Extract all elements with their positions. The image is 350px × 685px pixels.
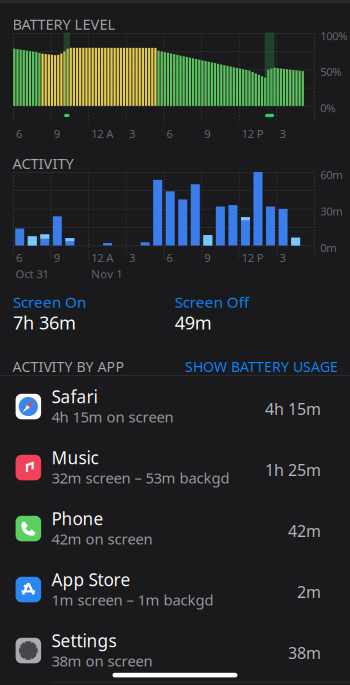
staticText: 1h 25m	[265, 459, 321, 481]
staticText: 30m	[320, 203, 342, 219]
button[interactable]: App Store	[0, 559, 350, 620]
staticText: 32m screen – 53m backgd	[51, 468, 229, 488]
staticText: 0m	[320, 240, 336, 255]
staticText: 12 P	[242, 250, 264, 265]
staticText: 6	[16, 126, 22, 141]
staticText: 7h 36m	[13, 310, 76, 335]
staticText: 42m on screen	[51, 529, 152, 549]
staticText: 3	[279, 250, 285, 265]
staticText: 9	[204, 126, 210, 141]
staticText: 6	[166, 126, 172, 141]
button[interactable]: SHOW BATTERY USAGE	[178, 357, 338, 376]
staticText: Safari	[51, 385, 97, 408]
staticText: 3	[129, 126, 135, 141]
staticText: 50%	[320, 64, 341, 79]
staticText: 6	[16, 250, 22, 265]
staticText: 49m	[175, 310, 212, 335]
staticText: Phone	[51, 507, 103, 530]
staticText: Nov 1	[91, 266, 122, 281]
staticText: 12 A	[91, 126, 113, 141]
staticText: 60m	[320, 167, 342, 182]
staticText: 9	[54, 126, 60, 141]
staticText: 100%	[320, 28, 347, 43]
button[interactable]: Settings	[0, 620, 350, 681]
staticText: Screen Off	[175, 291, 249, 312]
staticText: BATTERY LEVEL	[13, 14, 116, 34]
staticText: 12 P	[242, 126, 264, 141]
staticText: 9	[54, 250, 60, 265]
staticText: 42m	[288, 520, 321, 542]
button[interactable]: Screen On	[13, 291, 163, 333]
staticText: Screen On	[13, 291, 86, 312]
button[interactable]: Safari	[0, 376, 350, 437]
staticText: 12 A	[91, 250, 113, 265]
staticText: Oct 31	[16, 266, 49, 281]
staticText: Music	[51, 446, 98, 469]
staticText: Settings	[51, 629, 116, 652]
staticText: 3	[279, 126, 285, 141]
staticText: 9	[204, 250, 210, 265]
staticText: 3	[129, 250, 135, 265]
staticText: 38m	[288, 642, 321, 664]
button[interactable]: Screen Off	[175, 291, 325, 333]
button[interactable]: Phone	[0, 498, 350, 559]
staticText: 6	[166, 250, 172, 265]
staticText: ACTIVITY BY APP	[13, 357, 125, 376]
staticText: App Store	[51, 568, 130, 591]
staticText: 4h 15m on screen	[51, 407, 173, 427]
staticText: 0%	[320, 100, 335, 116]
staticText: 2m	[297, 581, 321, 603]
staticText: 1m screen – 1m backgd	[51, 590, 213, 610]
staticText: 4h 15m	[265, 398, 321, 420]
button[interactable]: Music	[0, 437, 350, 498]
staticText: 38m on screen	[51, 651, 152, 671]
staticText: SHOW BATTERY USAGE	[185, 357, 338, 376]
staticText: ACTIVITY	[13, 153, 74, 173]
